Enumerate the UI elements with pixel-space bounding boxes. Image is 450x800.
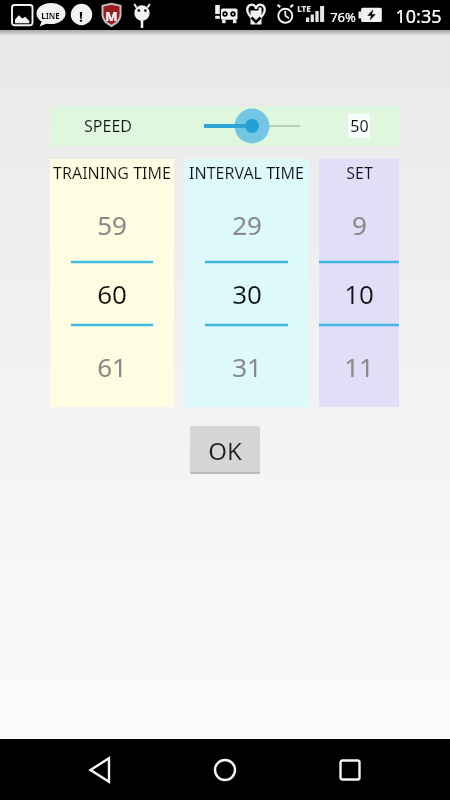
staticText: INTERVAL TIME — [189, 162, 304, 184]
button[interactable]: INTERVAL TIME — [184, 159, 309, 407]
staticText: 29 — [232, 207, 262, 242]
button[interactable] — [328, 758, 372, 782]
staticText: 10:35 — [395, 4, 442, 29]
staticText: 50 — [350, 115, 369, 137]
staticText: LINE — [41, 10, 60, 21]
button[interactable] — [78, 758, 122, 782]
staticText: 59 — [97, 207, 127, 242]
staticText: 61 — [97, 349, 127, 384]
staticText: SET — [346, 162, 373, 184]
button[interactable]: OK — [190, 426, 260, 474]
staticText: SPEED — [84, 115, 132, 137]
staticText: 9 — [352, 207, 367, 242]
button[interactable]: 50 — [348, 114, 370, 138]
staticText: 60 — [97, 276, 127, 311]
staticText: OK — [208, 434, 242, 467]
staticText: M — [105, 7, 118, 25]
staticText: TRAINING TIME — [53, 162, 171, 184]
button[interactable]: TRAINING TIME — [50, 159, 174, 407]
button[interactable] — [203, 758, 247, 782]
staticText: LTE — [297, 3, 311, 14]
staticText: 30 — [232, 276, 262, 311]
staticText: 11 — [344, 349, 374, 384]
button[interactable]: SET — [319, 159, 399, 407]
staticText: ! — [79, 7, 83, 26]
staticText: 31 — [232, 349, 262, 384]
staticText: 10 — [344, 276, 374, 311]
staticText: 76% — [330, 8, 356, 26]
